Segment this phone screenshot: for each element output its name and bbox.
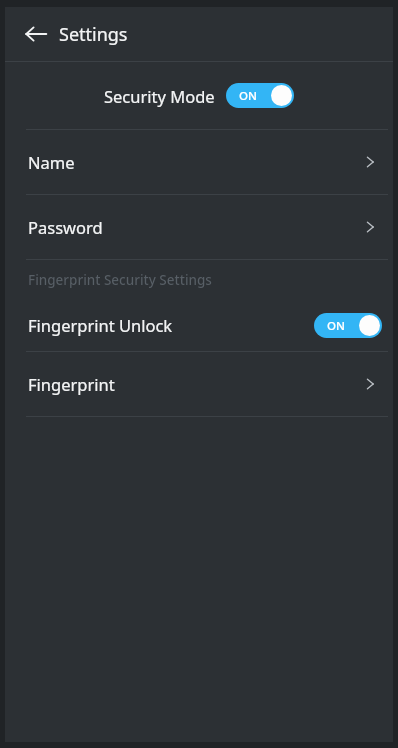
button[interactable]: Security Mode bbox=[5, 62, 393, 129]
button[interactable]: Fingerprint bbox=[5, 352, 393, 416]
button[interactable]: Password bbox=[5, 195, 393, 259]
button[interactable]: Back bbox=[20, 18, 52, 50]
staticText: Name bbox=[28, 151, 75, 173]
staticText: Security Mode bbox=[104, 85, 215, 107]
button[interactable]: Toggle on bbox=[226, 83, 294, 108]
staticText: Fingerprint bbox=[28, 373, 115, 395]
button[interactable]: Name bbox=[5, 130, 393, 194]
button[interactable]: Toggle on bbox=[314, 313, 382, 338]
staticText: ON bbox=[239, 88, 257, 104]
staticText: Fingerprint Unlock bbox=[28, 314, 173, 336]
staticText: Settings bbox=[59, 22, 128, 47]
staticText: Fingerprint Security Settings bbox=[28, 271, 212, 289]
button[interactable]: Fingerprint Unlock bbox=[5, 299, 393, 351]
staticText: Password bbox=[28, 216, 103, 238]
staticText: ON bbox=[327, 318, 345, 334]
